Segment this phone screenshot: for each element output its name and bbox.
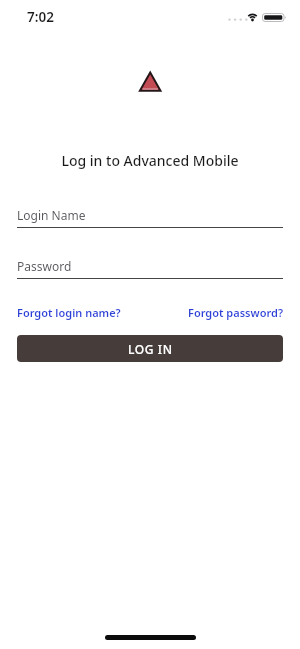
- staticText: Password: [17, 258, 72, 274]
- button[interactable]: Login Name: [17, 200, 283, 228]
- staticText: LOG IN: [128, 341, 173, 357]
- staticText: Login Name: [17, 207, 86, 223]
- button[interactable]: Forgot password?: [188, 305, 283, 320]
- staticText: Forgot login name?: [17, 305, 121, 320]
- button[interactable]: Forgot login name?: [17, 305, 121, 320]
- button[interactable]: LOG IN: [17, 335, 283, 362]
- button[interactable]: Password: [17, 251, 283, 279]
- staticText: Log in to Advanced Mobile: [0, 151, 300, 170]
- staticText: Forgot password?: [188, 305, 283, 320]
- staticText: 7:02: [27, 8, 54, 26]
